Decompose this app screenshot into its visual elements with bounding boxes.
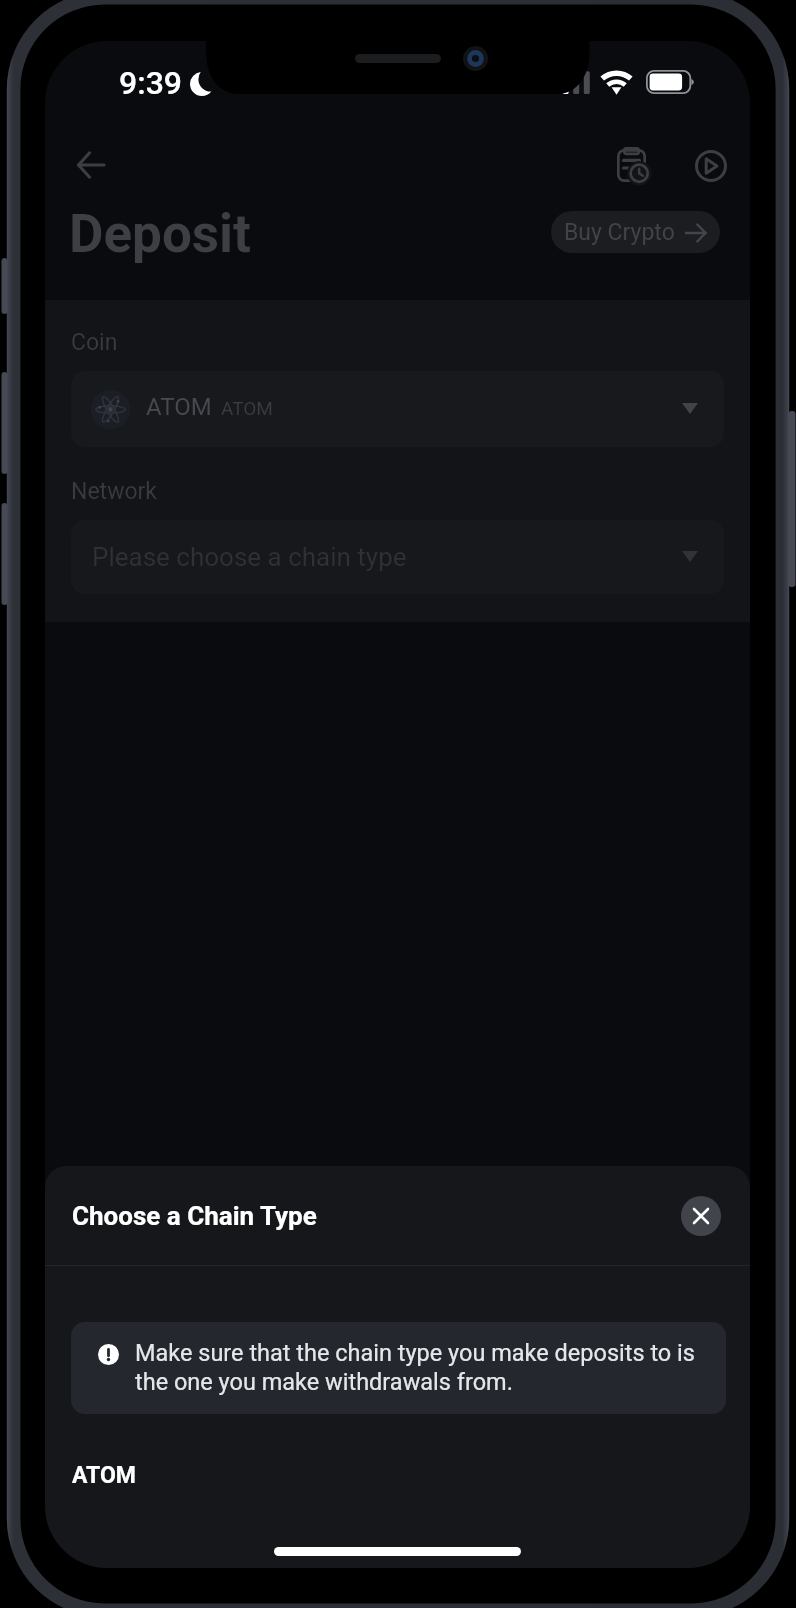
staticText: Choose a Chain Type (72, 1201, 317, 1231)
staticText: Deposit (69, 203, 251, 265)
button[interactable]: Buy Crypto (551, 211, 720, 253)
staticText: ATOM (146, 393, 212, 421)
staticText: Please choose a chain type (92, 542, 407, 572)
staticText: Make sure that the chain type you make d… (135, 1339, 705, 1396)
staticText: ATOM (72, 1462, 137, 1489)
staticText: Network (71, 478, 157, 505)
button[interactable]: Back (59, 133, 122, 196)
button[interactable]: Please choose a chain type (71, 520, 724, 594)
button[interactable]: Tutorial video (680, 135, 742, 197)
button[interactable]: Close (681, 1196, 721, 1236)
staticText: Coin (71, 329, 118, 356)
button[interactable]: Transaction history (600, 134, 662, 196)
button[interactable]: ATOM (71, 371, 724, 447)
staticText: Buy Crypto (564, 219, 675, 246)
staticText: 9:39 (119, 64, 182, 102)
staticText: ATOM (221, 397, 273, 419)
